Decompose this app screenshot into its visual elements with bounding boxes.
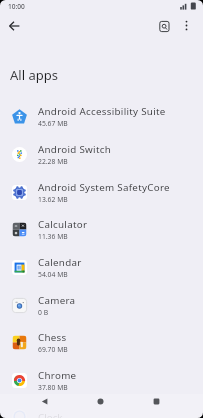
button[interactable]: Calculator: [0, 210, 203, 248]
staticText: 22.28 MB: [38, 157, 68, 166]
staticText: 69.70 MB: [38, 345, 68, 354]
button[interactable]: [154, 16, 175, 37]
staticText: Android Accessibility Suite: [38, 105, 166, 118]
staticText: Clock: [38, 411, 63, 418]
staticText: 37.80 MB: [38, 383, 68, 392]
staticText: 54.04 MB: [38, 270, 68, 279]
staticText: Camera: [38, 294, 76, 307]
staticText: 10:00: [8, 2, 25, 11]
staticText: All apps: [10, 66, 58, 84]
staticText: 11.36 MB: [38, 232, 68, 241]
staticText: Chess: [38, 331, 67, 344]
button[interactable]: Chess: [0, 323, 203, 361]
button[interactable]: Camera: [0, 286, 203, 324]
button[interactable]: [4, 16, 25, 37]
staticText: Calendar: [38, 256, 82, 269]
button[interactable]: Chrome: [0, 361, 203, 399]
button[interactable]: [24, 394, 64, 409]
staticText: 0 B: [38, 308, 49, 317]
staticText: 13.62 MB: [38, 195, 68, 204]
staticText: Android Switch: [38, 143, 112, 156]
button[interactable]: Android Switch: [0, 135, 203, 173]
staticText: 45.67 MB: [38, 119, 68, 128]
staticText: Chrome: [38, 369, 77, 382]
button[interactable]: [136, 394, 176, 409]
button[interactable]: Calendar: [0, 248, 203, 286]
button[interactable]: [177, 16, 196, 35]
button[interactable]: Android System SafetyCore: [0, 173, 203, 211]
staticText: Calculator: [38, 218, 88, 231]
button[interactable]: Android Accessibility Suite: [0, 97, 203, 135]
button[interactable]: [80, 394, 120, 409]
staticText: Android System SafetyCore: [38, 181, 170, 194]
